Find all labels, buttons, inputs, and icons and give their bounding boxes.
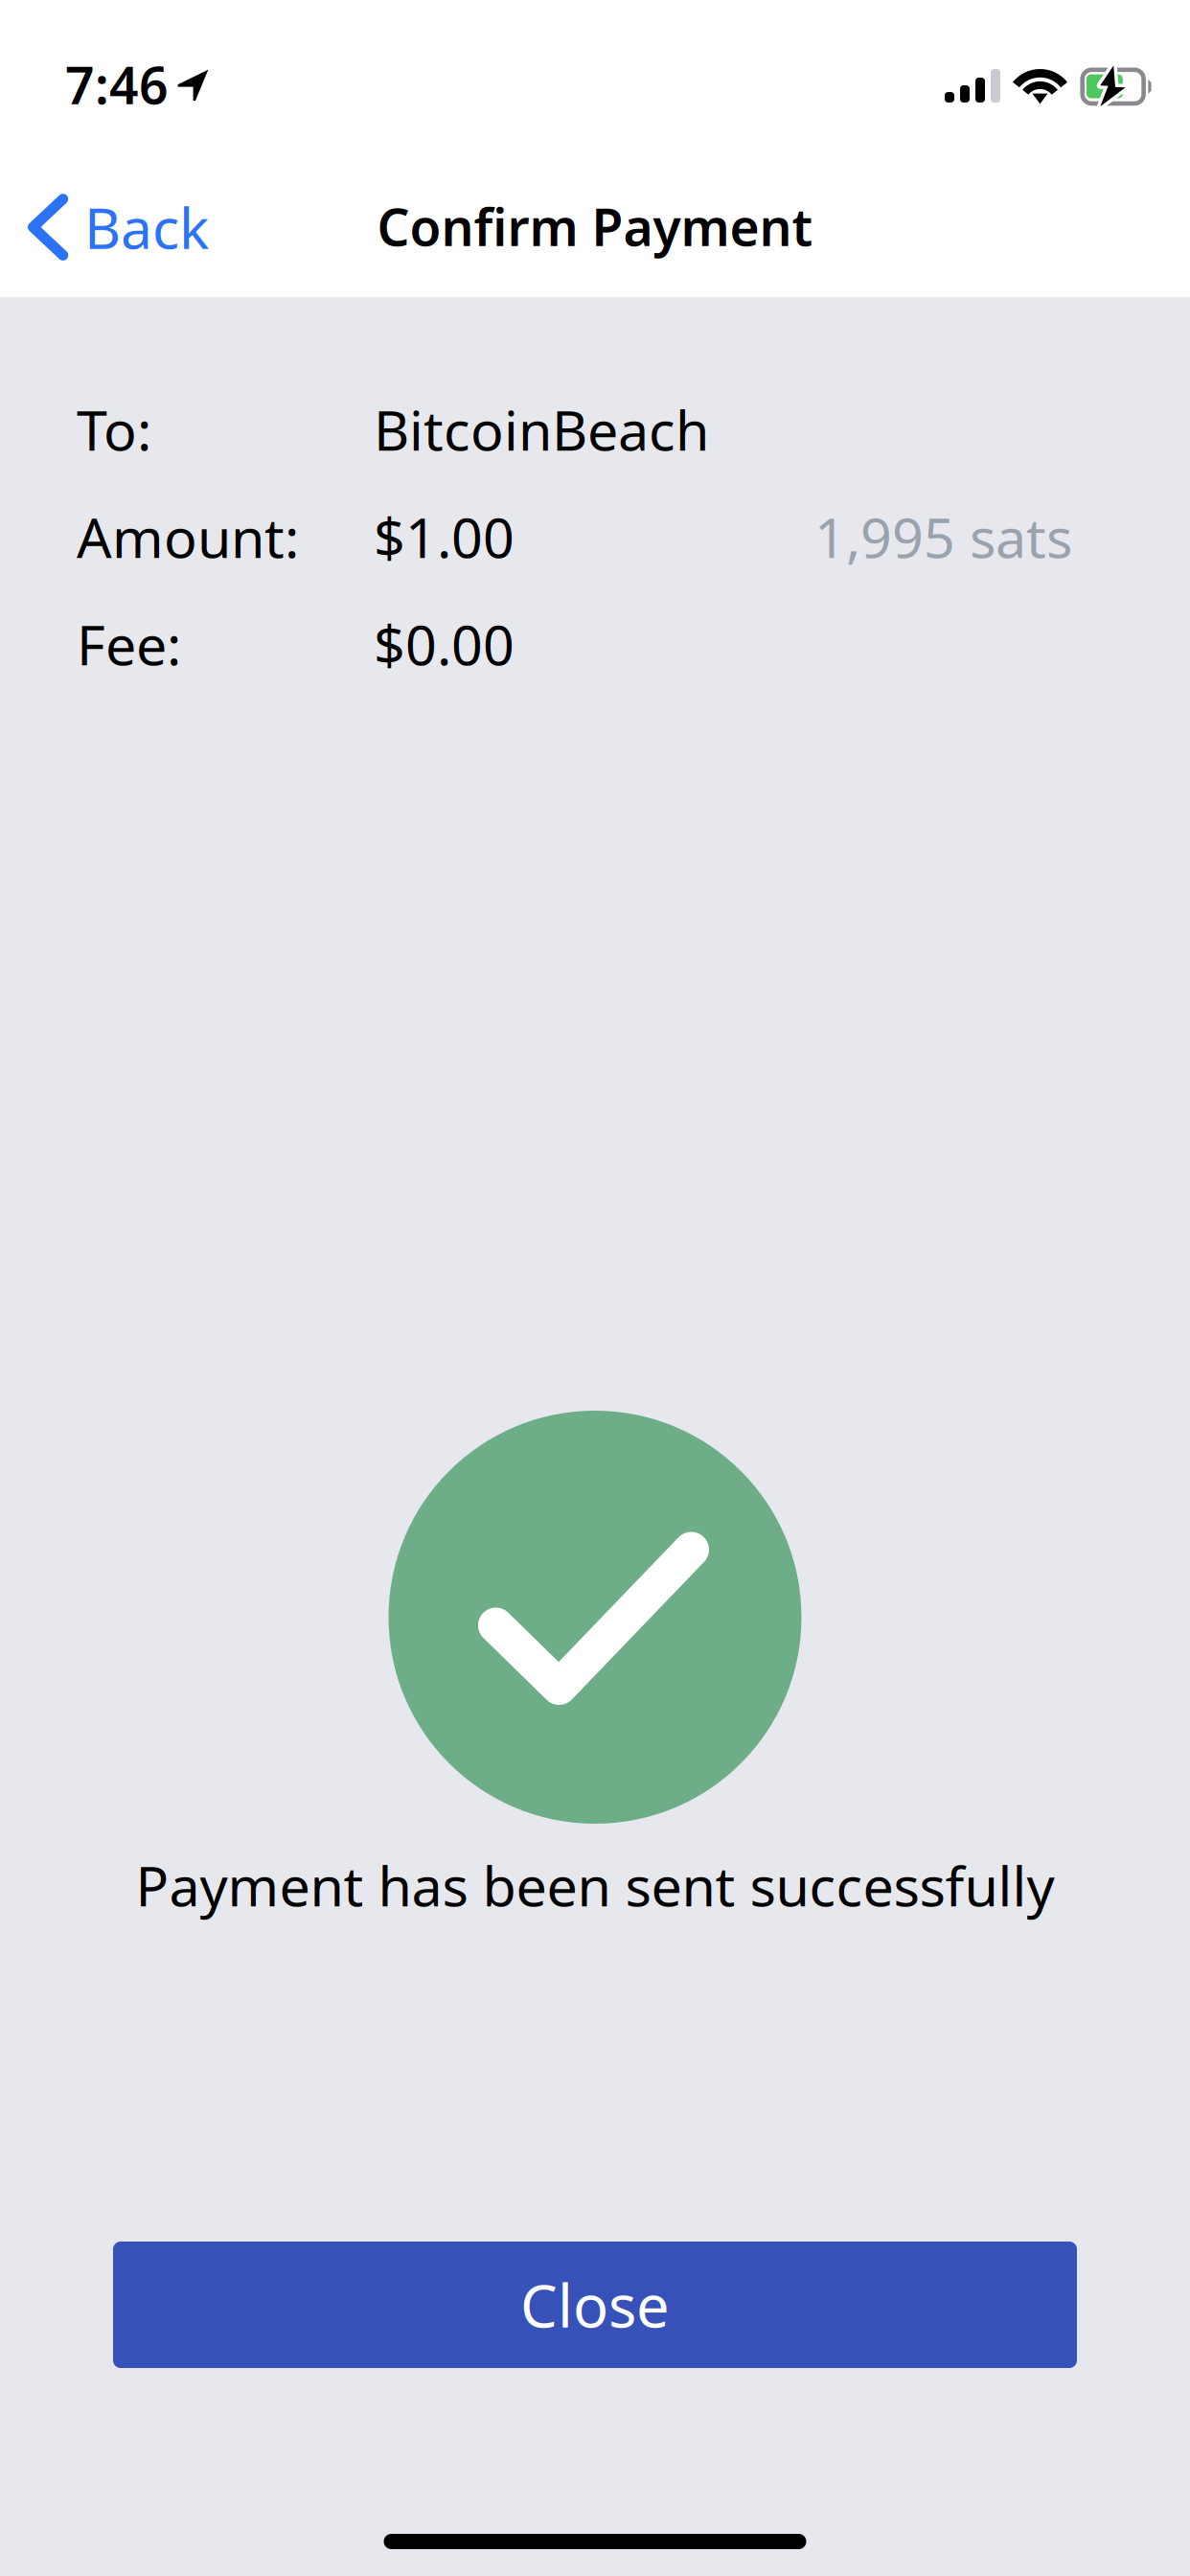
staticText: $1.00	[374, 500, 515, 573]
staticText: Payment has been sent successfully	[136, 1849, 1054, 1922]
staticText: BitcoinBeach	[374, 393, 709, 466]
staticText: To:	[77, 393, 151, 466]
staticText: 1,995 sats	[814, 500, 1072, 573]
staticText: Back	[84, 190, 209, 264]
button[interactable]: Back	[0, 172, 226, 282]
staticText: 7:46	[65, 50, 169, 118]
staticText: $0.00	[374, 607, 515, 680]
staticText: Close	[520, 2266, 670, 2344]
staticText: Fee:	[77, 607, 181, 680]
button[interactable]: Close	[113, 2242, 1077, 2368]
staticText: Confirm Payment	[377, 192, 813, 260]
staticText: Amount:	[77, 500, 299, 573]
